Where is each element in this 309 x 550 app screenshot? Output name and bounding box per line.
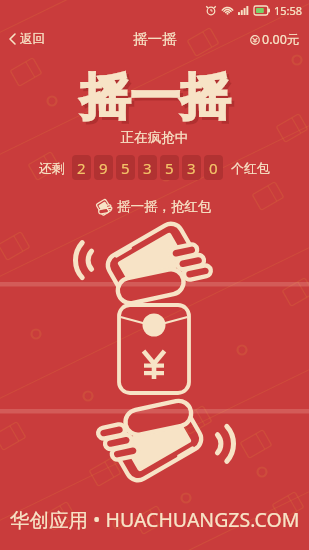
staticText: 返回 [20, 31, 45, 47]
staticText: 摇一摇 [80, 66, 230, 129]
staticText: 15:58 [274, 3, 303, 18]
staticText: 华创应用 • HUACHUANGZS.COM [10, 506, 300, 533]
staticText: 摇一摇，抢红包 [117, 198, 212, 215]
staticText: 个红包 [231, 160, 270, 176]
staticText: 3 [187, 158, 196, 178]
staticText: 9 [99, 158, 108, 178]
staticText: 正在疯抢中 [0, 129, 309, 146]
staticText: 2 [77, 158, 86, 178]
staticText: 摇一摇 [83, 69, 233, 132]
staticText: 还剩 [39, 160, 65, 176]
button[interactable]: 摇一摇，抢红包 [0, 198, 309, 215]
button[interactable]: 0.00元 [241, 24, 309, 55]
staticText: 5 [121, 158, 130, 178]
staticText: 0.00元 [262, 31, 300, 48]
staticText: 5 [165, 158, 174, 178]
staticText: 3 [143, 158, 152, 178]
staticText: 0 [209, 158, 218, 178]
button[interactable]: 返回 [0, 24, 54, 54]
staticText: 摇一摇 [133, 30, 177, 48]
